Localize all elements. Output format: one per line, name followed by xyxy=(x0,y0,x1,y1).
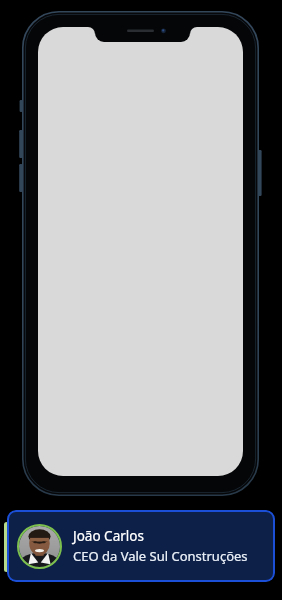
button[interactable]: Foto de João Carlos xyxy=(7,510,275,582)
staticText: João Carlos xyxy=(73,527,144,545)
other: Foto de João Carlos xyxy=(17,524,62,569)
staticText: CEO da Vale Sul Construções xyxy=(73,547,248,565)
